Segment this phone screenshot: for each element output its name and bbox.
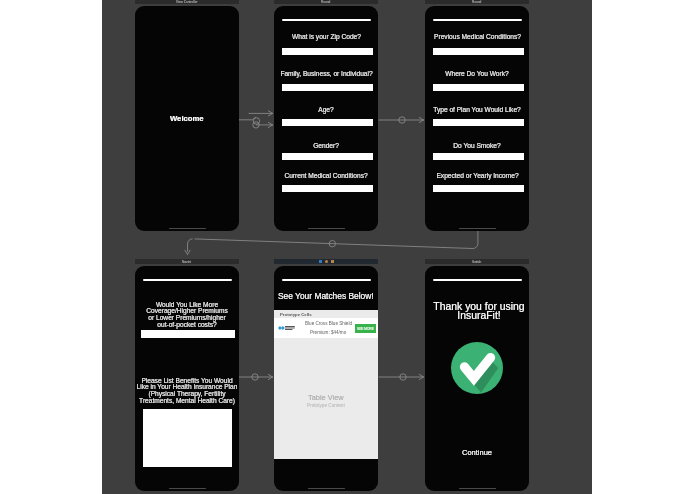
staticText: Switch bbox=[472, 260, 482, 264]
staticText: Age? bbox=[318, 106, 334, 113]
button[interactable]: Switch bbox=[425, 259, 529, 264]
staticText: SEE MORE bbox=[357, 327, 374, 331]
staticText: Blue Cross Blue Shield bbox=[305, 321, 352, 326]
staticText: Please List Benefits You Would Like in Y… bbox=[135, 377, 239, 405]
staticText: Expected or Yearly Income? bbox=[436, 172, 519, 179]
staticText: Type of Plan You Would Like? bbox=[433, 106, 521, 113]
button[interactable]: Continue bbox=[458, 446, 497, 458]
button[interactable]: Browser window controls bbox=[274, 259, 378, 264]
button[interactable]: Round bbox=[274, 0, 378, 4]
staticText: Thank you for using InsuraFit! bbox=[427, 301, 529, 322]
button[interactable]: Blue Cross Blue Shield bbox=[274, 318, 378, 338]
staticText: Navint bbox=[182, 260, 192, 264]
staticText: Gender? bbox=[313, 142, 339, 149]
staticText: Welcome bbox=[170, 114, 204, 123]
staticText: View Controller bbox=[176, 0, 198, 4]
staticText: What is your Zip Code? bbox=[292, 33, 361, 40]
button[interactable]: Round bbox=[425, 0, 529, 4]
button[interactable]: SEE MORE bbox=[355, 324, 376, 333]
button[interactable]: Navint bbox=[135, 259, 239, 264]
staticText: Continue bbox=[462, 448, 493, 456]
staticText: See Your Matches Below! bbox=[278, 291, 374, 300]
staticText: Previous Medical Conditions? bbox=[434, 33, 521, 40]
staticText: Current Medical Conditions? bbox=[284, 172, 368, 179]
staticText: Round bbox=[321, 0, 331, 4]
staticText: Do You Smoke? bbox=[453, 142, 501, 149]
staticText: Premium: $44/mo bbox=[310, 330, 347, 335]
staticText: Prototype Content bbox=[307, 403, 345, 408]
staticText: Would You Like More Coverage/Higher Prem… bbox=[144, 301, 230, 329]
staticText: Where Do You Work? bbox=[445, 70, 509, 77]
staticText: Table View bbox=[308, 393, 344, 401]
staticText: Family, Business, or Individual? bbox=[280, 70, 373, 77]
button[interactable]: View Controller bbox=[135, 0, 239, 4]
staticText: Prototype Cells bbox=[280, 312, 312, 317]
staticText: Round bbox=[472, 0, 482, 4]
other: Success bbox=[451, 342, 503, 394]
